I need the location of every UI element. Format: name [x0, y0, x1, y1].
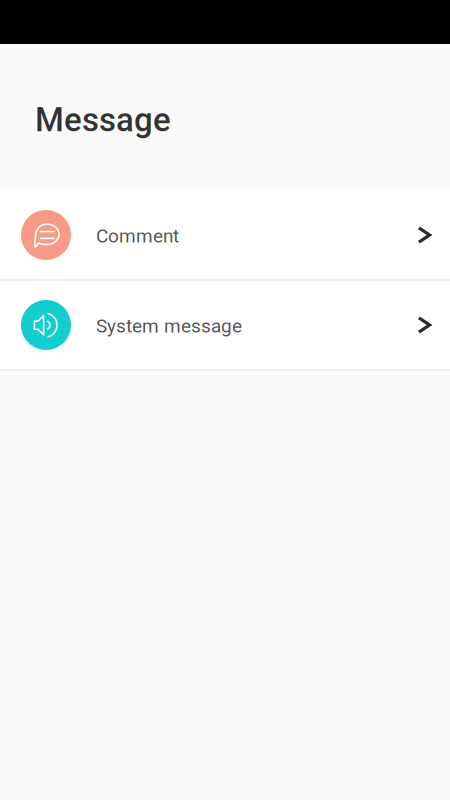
staticText: System message [96, 315, 242, 337]
staticText: Comment [96, 225, 179, 247]
staticText: Message [35, 101, 171, 139]
button[interactable]: Comment [0, 191, 450, 279]
button[interactable]: System message [0, 281, 450, 369]
